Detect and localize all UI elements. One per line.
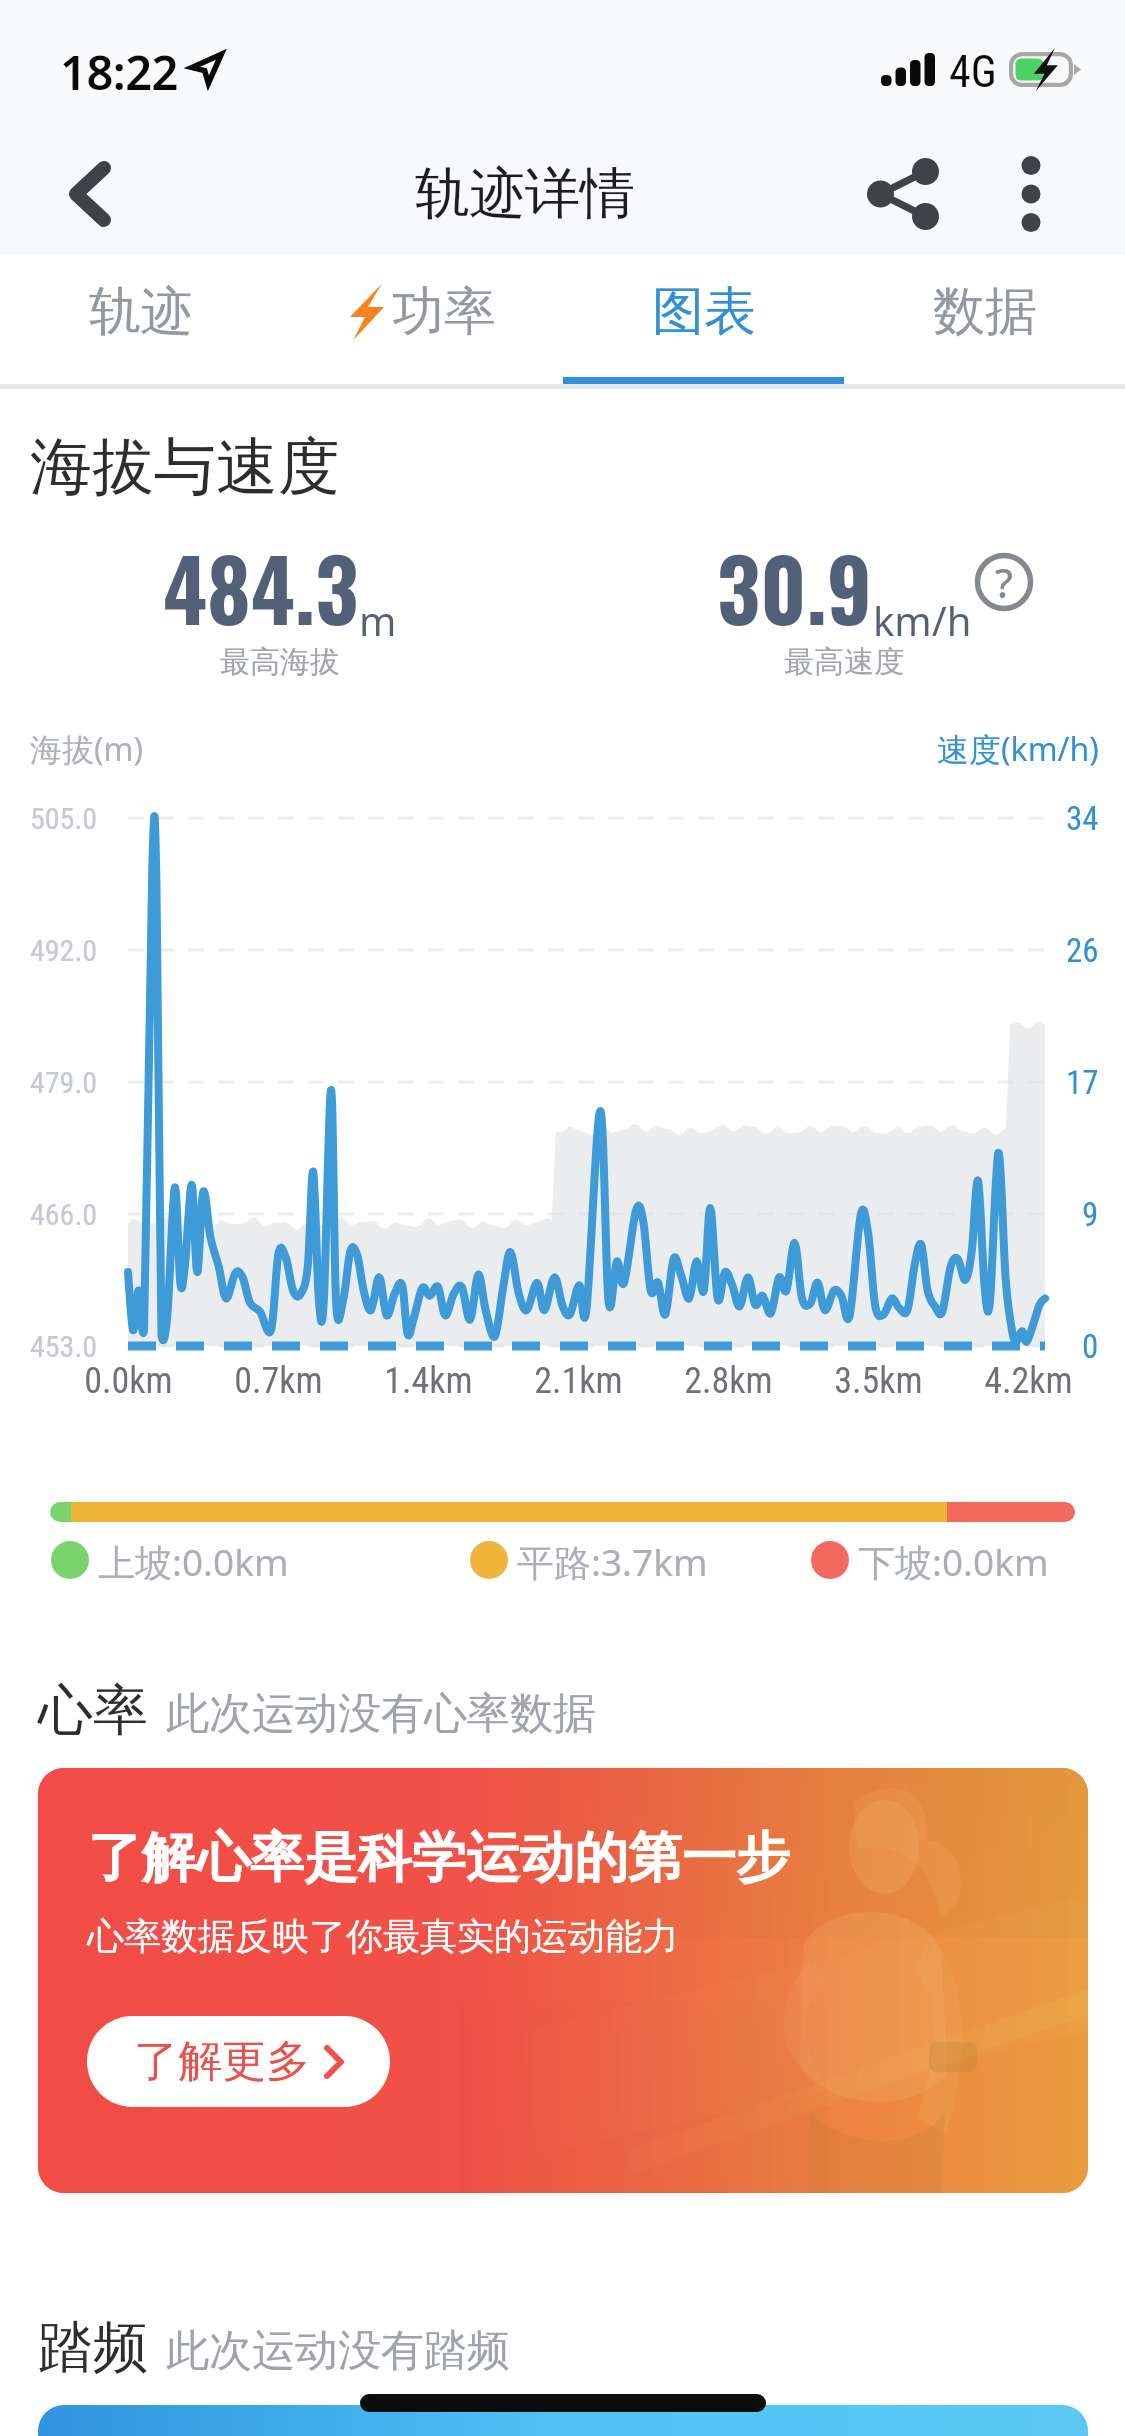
button[interactable]: 了解心率是科学运动的第一步 [38, 1768, 1088, 2193]
staticText: 图表 [652, 279, 756, 345]
staticText: 453.0 [30, 1329, 98, 1364]
staticText: 下坡:0.0km [858, 1536, 1049, 1584]
button[interactable]: Share [848, 132, 958, 255]
staticText: 最高海拔 [220, 643, 340, 681]
staticText: 17 [1066, 1063, 1099, 1102]
staticText: 0.7km [234, 1360, 323, 1402]
button[interactable]: Back [20, 132, 160, 255]
staticText: 0.0km [84, 1360, 173, 1402]
staticText: 4.2km [984, 1360, 1073, 1402]
staticText: 功率 [392, 279, 496, 345]
button[interactable]: 了解更多 [87, 2016, 390, 2107]
staticText: 3.5km [834, 1360, 923, 1402]
staticText: 26 [1066, 931, 1099, 970]
staticText: 海拔(m) [30, 727, 144, 771]
staticText: 4G [949, 46, 997, 98]
staticText: 2.8km [684, 1360, 773, 1402]
button[interactable]: 功率 [282, 255, 563, 385]
staticText: 492.0 [30, 933, 98, 968]
staticText: 1.4km [384, 1360, 473, 1402]
staticText: 此次运动没有踏频 [166, 2324, 510, 2378]
staticText: 数据 [933, 279, 1037, 345]
button[interactable]: Help [975, 553, 1033, 611]
staticText: 平路:3.7km [517, 1536, 708, 1584]
staticText: ? [995, 555, 1013, 609]
button[interactable]: 数据 [844, 255, 1125, 385]
staticText: 心率数据反映了你最真实的运动能力 [87, 1913, 679, 1960]
staticText: 30.9 [717, 525, 873, 649]
staticText: 上坡:0.0km [98, 1536, 289, 1584]
staticText: m [359, 593, 397, 647]
staticText: 484.3 [163, 525, 359, 649]
staticText: 海拔与速度 [30, 428, 340, 506]
button[interactable]: 轨迹 [0, 255, 282, 385]
staticText: 最高速度 [784, 643, 904, 681]
staticText: 踏频 [38, 2313, 148, 2382]
staticText: 505.0 [30, 801, 98, 836]
button[interactable]: 图表 [563, 255, 844, 385]
button[interactable]: More options [984, 132, 1078, 255]
staticText: 此次运动没有心率数据 [166, 1687, 596, 1741]
staticText: 轨迹 [89, 279, 193, 345]
staticText: 心率 [38, 1676, 148, 1745]
staticText: 速度(km/h) [937, 727, 1099, 771]
staticText: 34 [1066, 799, 1099, 838]
staticText: km/h [873, 593, 972, 647]
staticText: 2.1km [534, 1360, 623, 1402]
staticText: 18:22 [60, 40, 179, 104]
staticText: 了解更多 [134, 2034, 310, 2089]
staticText: 479.0 [30, 1065, 98, 1100]
staticText: 466.0 [30, 1197, 98, 1232]
staticText: 了解心率是科学运动的第一步 [88, 1824, 790, 1892]
staticText: 轨迹详情 [415, 159, 635, 228]
staticText: 0 [1082, 1327, 1099, 1366]
staticText: 9 [1082, 1195, 1099, 1234]
